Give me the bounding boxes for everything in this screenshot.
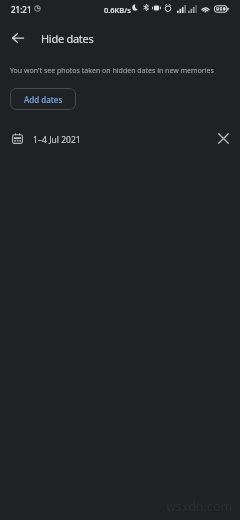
button[interactable]: Navigate up bbox=[3, 23, 33, 53]
staticText: Hide dates bbox=[41, 31, 94, 46]
button[interactable]: 1–4 Jul 2021 bbox=[0, 122, 240, 156]
staticText: You won't see photos taken on hidden dat… bbox=[10, 66, 214, 76]
button[interactable]: Remove date range bbox=[209, 124, 237, 152]
staticText: 1–4 Jul 2021 bbox=[33, 134, 81, 146]
button[interactable]: Add dates bbox=[10, 88, 76, 110]
staticText: Add dates bbox=[24, 94, 63, 105]
staticText: 0.6KB/s bbox=[104, 5, 131, 15]
staticText: wsxdn.com bbox=[166, 498, 233, 515]
staticText: 21:21 bbox=[11, 4, 32, 15]
